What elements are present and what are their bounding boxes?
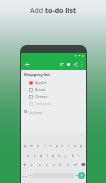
button[interactable]: v [51,161,56,168]
button[interactable]: c [44,161,49,168]
button[interactable]: Add collaborator [58,60,65,69]
staticText: to-do list [45,6,77,16]
staticText: w [30,143,33,148]
staticText: k [72,153,74,158]
staticText: g [52,153,55,158]
staticText: ?123 [22,174,28,177]
button[interactable]: d [39,152,44,159]
staticText: l [78,153,79,158]
button[interactable]: y [54,142,59,149]
button[interactable]: Back [23,60,31,69]
staticText: Cheese [35,94,48,99]
button[interactable]: Shift [22,161,27,168]
staticText: i [68,143,69,148]
button[interactable]: Tomatoes [21,100,86,107]
staticText: q [24,143,27,148]
button[interactable]: List item [21,108,86,115]
button[interactable]: Comma [28,172,32,179]
button[interactable]: z [29,161,34,168]
button[interactable]: t [48,142,53,149]
button[interactable]: Change theme [65,60,72,69]
button[interactable]: p [79,142,84,149]
button[interactable]: Backspace [80,161,85,168]
staticText: Tomatoes [35,101,52,106]
staticText: y [56,143,58,148]
staticText: h [58,153,61,158]
staticText: t [50,143,52,148]
button[interactable]: Enter [78,172,85,179]
staticText: j [65,153,66,158]
staticText: f [47,153,49,158]
button[interactable]: x [37,161,42,168]
button[interactable]: j [63,152,68,159]
staticText: b [59,162,62,167]
staticText: e [37,143,40,148]
button[interactable]: o [73,142,78,149]
staticText: Shopping list [24,72,50,77]
staticText: Bread [35,87,46,92]
button[interactable]: w [29,142,34,149]
staticText: List item [29,110,43,114]
button[interactable]: n [66,161,71,168]
button[interactable]: ?123 [22,172,28,179]
staticText: d [40,153,43,158]
button[interactable]: r [42,142,47,149]
staticText: c [46,162,48,167]
button[interactable]: Bread [21,86,86,93]
button[interactable]: l [76,152,81,159]
staticText: m [74,162,78,167]
button[interactable]: q [23,142,28,149]
button[interactable]: Period [74,172,78,179]
staticText: n [67,162,70,167]
button[interactable]: More options [79,60,84,69]
staticText: r [44,143,46,148]
button[interactable]: Share [72,60,79,69]
staticText: Add [30,6,45,16]
button[interactable]: g [51,152,56,159]
button[interactable]: b [58,161,63,168]
staticText: s [34,153,36,158]
button[interactable]: a [26,152,31,159]
button[interactable]: e [36,142,41,149]
button[interactable]: k [70,152,75,159]
staticText: v [53,162,55,167]
button[interactable]: m [73,161,78,168]
staticText: u [61,143,64,148]
staticText: a [27,153,30,158]
staticText: x [39,162,41,167]
button[interactable]: s [32,152,37,159]
staticText: Apples [35,80,47,85]
staticText: z [31,162,33,167]
button[interactable]: Cheese [21,93,86,100]
staticText: o [74,143,77,148]
button[interactable]: i [66,142,71,149]
staticText: p [80,143,83,148]
button[interactable]: f [45,152,50,159]
button[interactable]: Apples [21,79,86,86]
button[interactable]: h [57,152,62,159]
button[interactable]: u [60,142,65,149]
